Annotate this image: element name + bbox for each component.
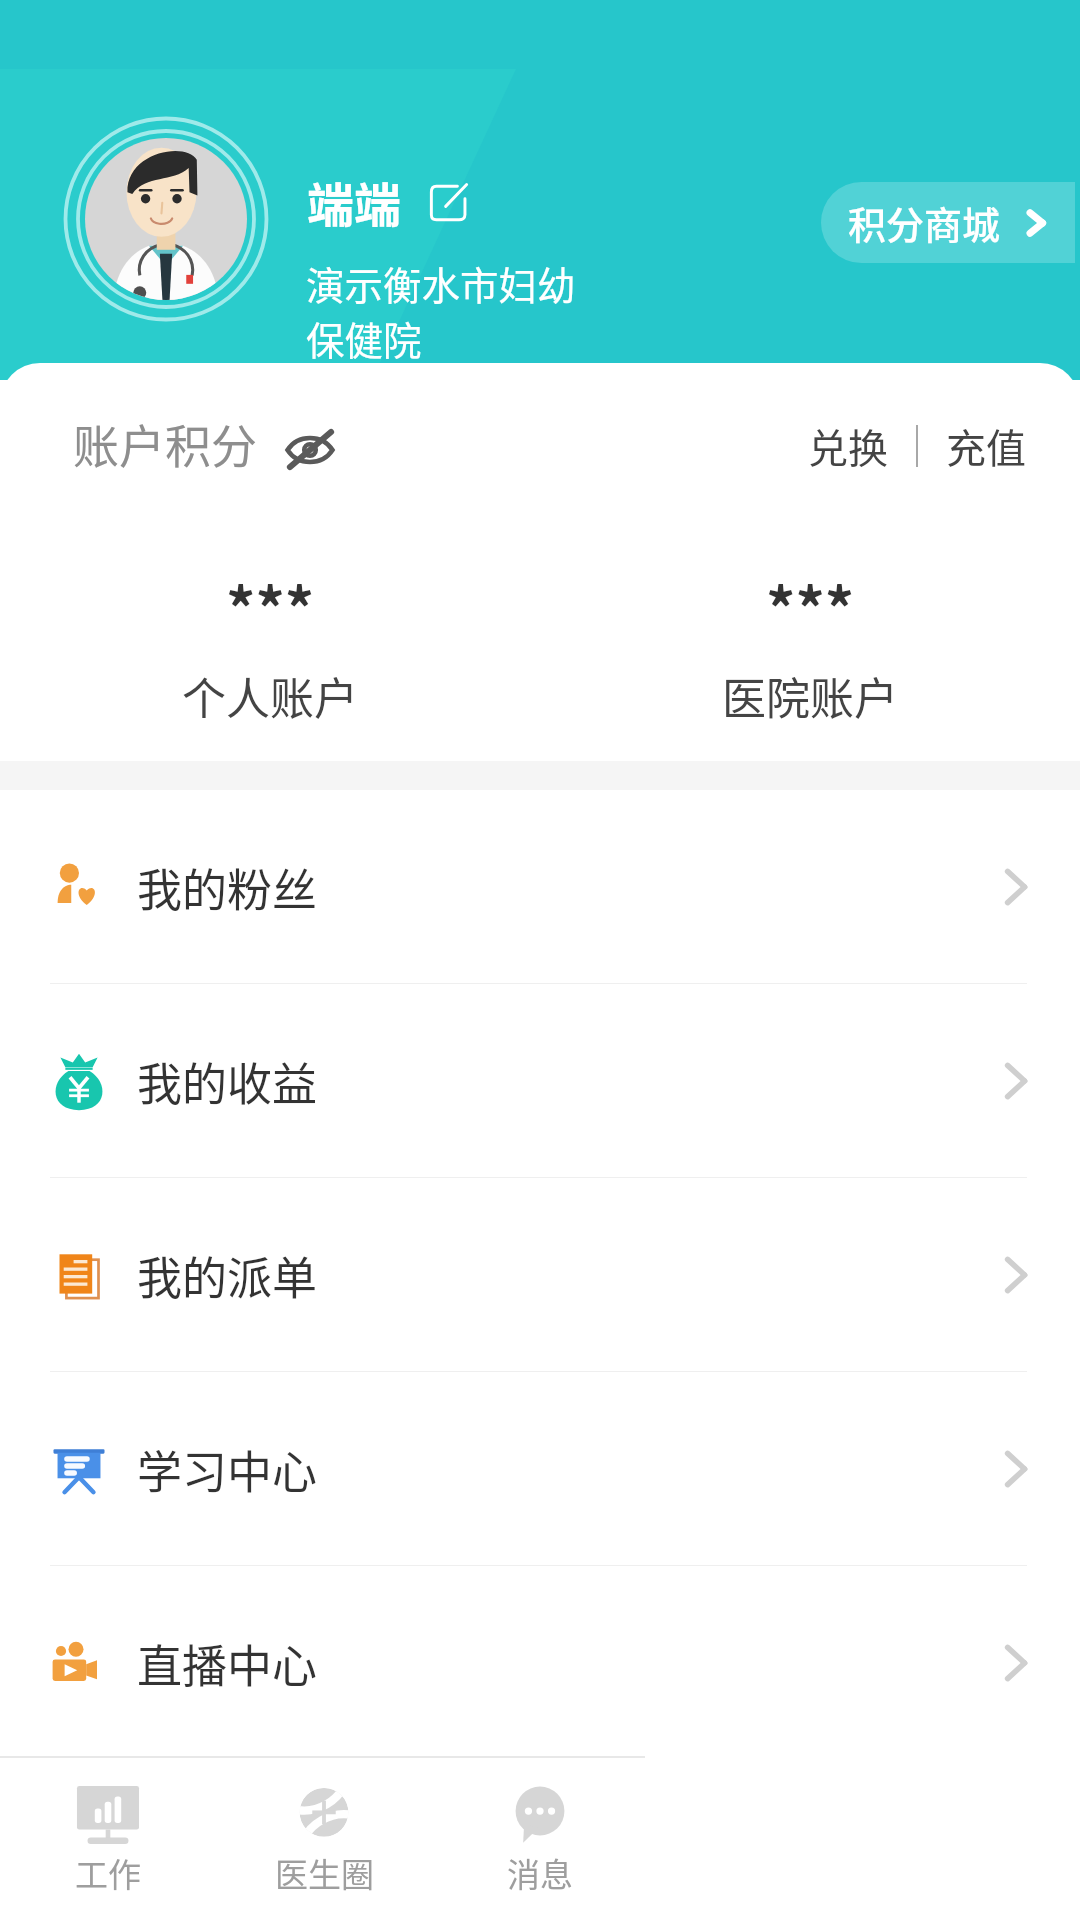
staticText: 积分商城 — [848, 195, 1001, 250]
button[interactable]: 学习中心 — [0, 1372, 1080, 1566]
staticText: 兑换 — [808, 417, 888, 475]
staticText: *** — [766, 564, 855, 648]
staticText: 消息 — [507, 1849, 573, 1897]
button[interactable]: *** — [0, 564, 540, 728]
staticText: 直播中心 — [137, 1631, 318, 1696]
button[interactable]: 我的粉丝 — [0, 790, 1080, 984]
staticText: 学习中心 — [137, 1437, 318, 1502]
button[interactable]: 我的派单 — [0, 1178, 1080, 1372]
button[interactable]: 兑换 — [808, 417, 888, 475]
staticText: 医生圈 — [275, 1849, 374, 1897]
button[interactable]: 工作 — [0, 1758, 216, 1920]
button[interactable]: 充值 — [946, 417, 1026, 475]
button[interactable]: *** — [540, 564, 1080, 728]
button[interactable]: 直播中心 — [0, 1566, 1080, 1760]
staticText: 医院账户 — [722, 664, 898, 728]
staticText: 端端 — [307, 167, 401, 235]
staticText: 我的粉丝 — [137, 855, 318, 920]
staticText: 个人账户 — [182, 664, 358, 728]
button[interactable]: 消息 — [432, 1758, 648, 1920]
staticText: 我的收益 — [137, 1049, 318, 1114]
staticText: 充值 — [946, 417, 1026, 475]
staticText: *** — [226, 564, 315, 648]
staticText: 工作 — [75, 1849, 141, 1897]
staticText: 我的派单 — [137, 1243, 318, 1308]
button[interactable]: 我的收益 — [0, 984, 1080, 1178]
staticText: 演示衡水市妇幼 保健院 — [306, 255, 576, 366]
button[interactable]: Edit profile — [428, 182, 470, 224]
staticText: 账户积分 — [73, 410, 257, 477]
button[interactable]: 积分商城 — [821, 182, 1075, 263]
button[interactable]: 医生圈 — [216, 1758, 432, 1920]
button[interactable]: 账户积分 — [73, 410, 335, 477]
